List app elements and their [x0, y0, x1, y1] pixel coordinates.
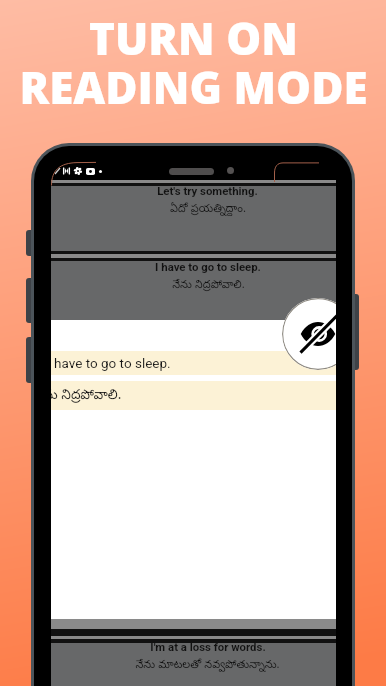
button[interactable]: I have to go to sleep. [51, 351, 336, 375]
staticText: నేను నిద్రపోవాలి. [51, 387, 122, 405]
staticText: ఏదో ప్రయత్నిద్దాం. [170, 202, 246, 217]
staticText: I have to go to sleep. [51, 355, 171, 371]
staticText: TURN ON [89, 8, 298, 68]
button[interactable]: I'm at a loss for words. [51, 643, 336, 686]
staticText: I'm at a loss for words. [150, 640, 266, 653]
button[interactable]: I have to go to sleep. [51, 261, 336, 321]
staticText: నేను మాటలతో నవ్వపోతున్నాను. [135, 658, 280, 673]
staticText: Let's try something. [157, 184, 258, 197]
staticText: I have to go to sleep. [155, 260, 261, 273]
button[interactable]: Let's try something. [51, 186, 336, 251]
staticText: READING MODE [19, 57, 368, 117]
button[interactable]: Hide translations [282, 298, 336, 370]
button[interactable]: నేను నిద్రపోవాలి. [51, 381, 336, 410]
staticText: నేను నిద్రపోవాలి. [172, 278, 245, 293]
